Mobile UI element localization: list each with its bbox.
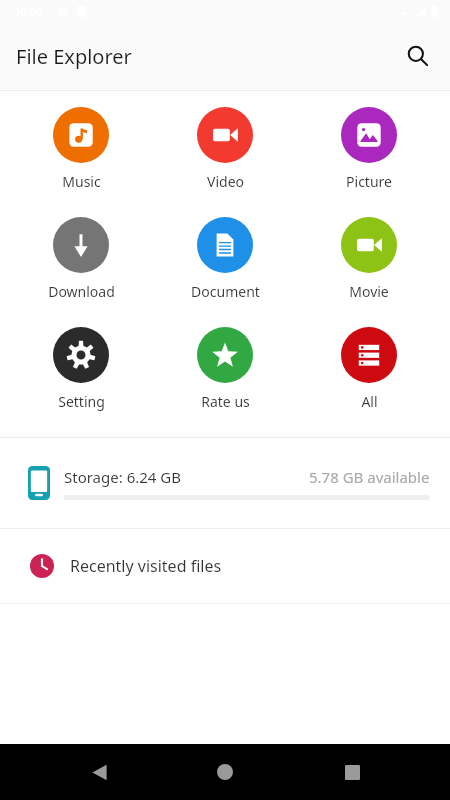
- staticText: Music: [62, 172, 101, 191]
- staticText: Picture: [346, 172, 392, 191]
- staticText: File Explorer: [16, 43, 132, 70]
- staticText: Storage: 6.24 GB: [64, 467, 181, 487]
- staticText: Document: [191, 282, 260, 301]
- button[interactable]: Movie: [306, 215, 432, 303]
- button[interactable]: Rate us: [162, 325, 288, 413]
- button[interactable]: Music: [18, 105, 144, 193]
- staticText: All: [361, 392, 378, 411]
- staticText: Movie: [349, 282, 389, 301]
- staticText: 5.78 GB available: [309, 467, 430, 487]
- button[interactable]: Search: [394, 32, 442, 80]
- button[interactable]: Back: [71, 744, 127, 800]
- button[interactable]: Document: [162, 215, 288, 303]
- staticText: Download: [48, 282, 115, 301]
- button[interactable]: Storage: 6.24 GB: [0, 438, 450, 528]
- button[interactable]: Setting: [18, 325, 144, 413]
- button[interactable]: Recently visited files: [0, 529, 450, 603]
- button[interactable]: All: [306, 325, 432, 413]
- button[interactable]: Home: [197, 744, 253, 800]
- button[interactable]: Picture: [306, 105, 432, 193]
- staticText: Recently visited files: [70, 555, 222, 577]
- button[interactable]: Recents: [324, 744, 380, 800]
- staticText: Rate us: [201, 392, 250, 411]
- staticText: Setting: [58, 392, 105, 411]
- button[interactable]: Download: [18, 215, 144, 303]
- button[interactable]: Video: [162, 105, 288, 193]
- staticText: Video: [207, 172, 244, 191]
